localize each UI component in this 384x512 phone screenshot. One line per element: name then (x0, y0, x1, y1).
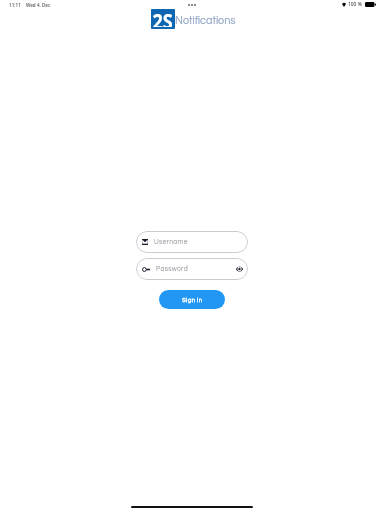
button[interactable]: Password (136, 258, 248, 280)
staticText: Password (156, 266, 236, 273)
staticText: Sign in (182, 297, 203, 303)
staticText: 2S (152, 7, 173, 27)
staticText: 100 % (348, 1, 362, 8)
button[interactable]: Username (136, 231, 248, 253)
button[interactable]: Sign in (159, 290, 225, 309)
staticText: Wed 4. Dec (26, 2, 51, 8)
staticText: Notifications (175, 15, 236, 26)
staticText: 11:11 (9, 2, 21, 8)
other: Show password (236, 266, 243, 272)
staticText: Username (154, 239, 243, 246)
